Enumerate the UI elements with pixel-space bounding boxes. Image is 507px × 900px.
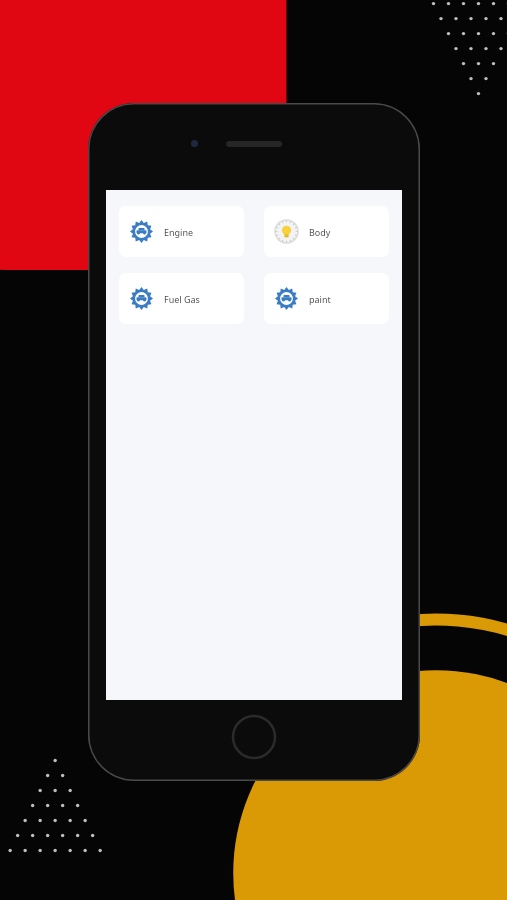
staticText: Body <box>309 226 331 238</box>
button[interactable]: Body <box>264 206 389 257</box>
staticText: paint <box>309 293 331 305</box>
button[interactable]: Engine <box>119 206 244 257</box>
button[interactable]: paint <box>264 273 389 324</box>
button[interactable]: Fuel Gas <box>119 273 244 324</box>
staticText: Engine <box>164 226 194 238</box>
staticText: Fuel Gas <box>164 293 200 305</box>
